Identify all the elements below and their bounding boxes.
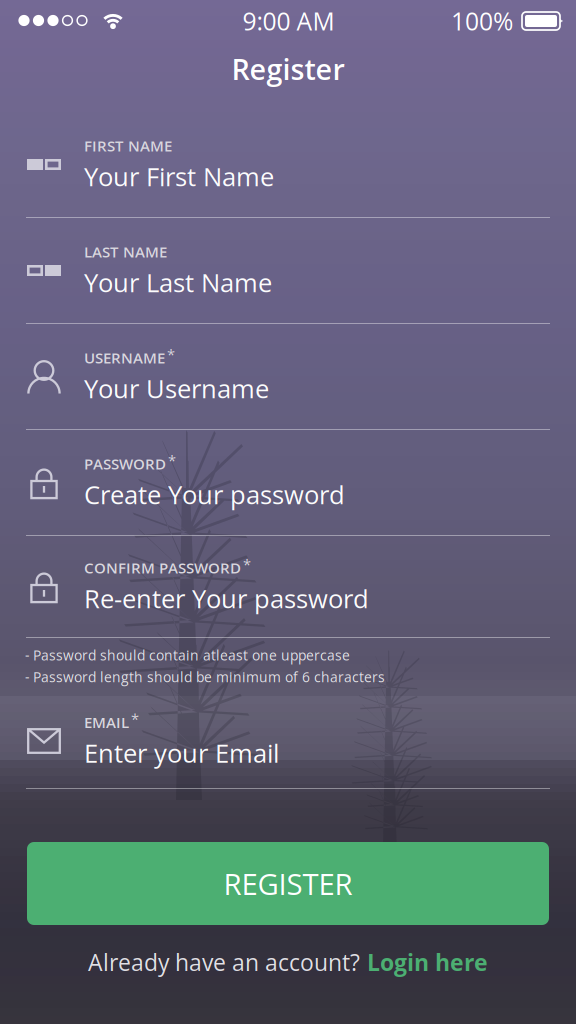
staticText: Enter your Email	[84, 735, 279, 770]
staticText: *	[168, 450, 176, 470]
staticText: CONFIRM PASSWORD	[84, 557, 241, 578]
staticText: *	[243, 554, 251, 574]
button[interactable]: USERNAME	[0, 324, 576, 429]
staticText: LAST NAME	[84, 241, 167, 262]
staticText: Re-enter Your password	[84, 581, 369, 616]
button[interactable]: EMAIL	[0, 694, 576, 788]
staticText: USERNAME	[84, 347, 165, 368]
staticText: *	[167, 344, 175, 364]
staticText: PASSWORD	[84, 453, 166, 474]
button[interactable]: PASSWORD	[0, 430, 576, 535]
staticText: - Password should contain atleast one up…	[25, 646, 350, 664]
staticText: Create Your password	[84, 477, 345, 512]
button[interactable]: Already have an account?	[0, 939, 576, 985]
staticText: Your Username	[84, 371, 269, 406]
staticText: FIRST NAME	[84, 135, 172, 156]
staticText: REGISTER	[223, 863, 352, 903]
staticText: Your Last Name	[84, 265, 272, 300]
staticText: Already have an account?	[88, 946, 360, 978]
staticText: Register	[231, 49, 344, 88]
staticText: 9:00 AM	[242, 4, 334, 38]
button[interactable]: REGISTER	[27, 842, 549, 925]
staticText: EMAIL	[84, 712, 129, 732]
staticText: 100%	[451, 4, 513, 38]
button[interactable]: CONFIRM PASSWORD	[0, 536, 576, 637]
staticText: Login here	[367, 946, 488, 978]
button[interactable]: FIRST NAME	[0, 112, 576, 217]
staticText: *	[131, 709, 139, 729]
staticText: - Password length should be minimum of 6…	[25, 667, 385, 686]
staticText: Your First Name	[84, 159, 274, 194]
button[interactable]: LAST NAME	[0, 218, 576, 323]
